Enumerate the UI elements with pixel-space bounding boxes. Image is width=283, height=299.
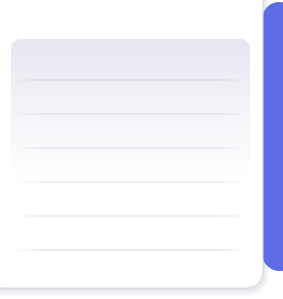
button[interactable]: Document page preview xyxy=(0,0,283,299)
